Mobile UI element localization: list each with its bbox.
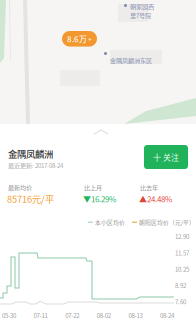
staticText: 比去年 <box>140 183 158 192</box>
staticText: 08-13 <box>128 311 142 320</box>
staticText: 08-02 <box>97 311 111 320</box>
staticText: 07-22 <box>65 311 79 320</box>
staticText: 金隅凤麟洲东区 <box>110 56 152 65</box>
staticText: + <box>88 34 92 44</box>
staticText: 10.25 <box>175 265 189 273</box>
staticText: 11.57 <box>175 248 189 257</box>
button[interactable]: Collapse <box>91 127 111 138</box>
staticText: 85716元/平 <box>7 192 54 205</box>
staticText: 十 <box>153 151 161 163</box>
staticText: 关注 <box>163 151 179 163</box>
staticText: 8.6万 <box>67 33 87 45</box>
staticText: 最新均价 <box>8 183 32 192</box>
staticText: ▼16.29% <box>83 193 116 205</box>
staticText: 本小区均价 <box>95 218 125 226</box>
staticText: 朝家园西 <box>130 2 154 11</box>
staticText: 08-24 <box>160 311 174 320</box>
staticText: 最近更新: 2017-08-24 <box>8 161 63 170</box>
staticText: 比上月 <box>84 183 102 192</box>
staticText: 12.90 <box>175 232 189 241</box>
staticText: ▲24.48% <box>139 193 172 205</box>
staticText: 朝阳区均价（元/平） <box>139 218 195 226</box>
button[interactable]: 十 <box>144 145 188 169</box>
staticText: 里7号院 <box>130 11 151 20</box>
staticText: 8.92 <box>175 281 186 290</box>
staticText: 7.60 <box>175 297 186 306</box>
staticText: 07-11 <box>34 311 48 320</box>
staticText: 金隅凤麟洲 <box>8 147 53 160</box>
staticText: 05-30 <box>2 311 16 320</box>
